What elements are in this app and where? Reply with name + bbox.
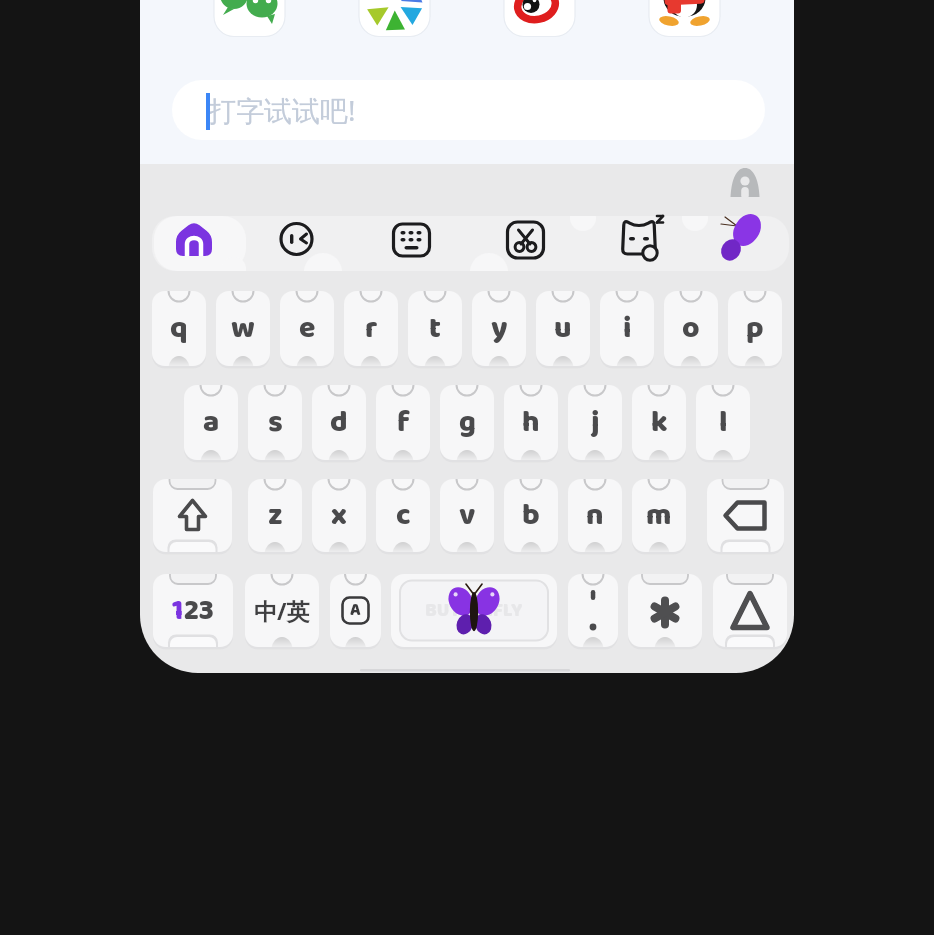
staticText: n: [586, 492, 604, 540]
staticText: BUTTERFLY: [425, 596, 523, 626]
button[interactable]: [709, 212, 769, 270]
button[interactable]: y: [472, 291, 526, 366]
button[interactable]: [495, 212, 555, 270]
staticText: y: [491, 305, 508, 353]
staticText: d: [330, 399, 348, 447]
button[interactable]: q: [152, 291, 206, 366]
button[interactable]: l: [696, 385, 750, 460]
button[interactable]: [628, 574, 702, 647]
staticText: e: [299, 305, 316, 353]
button[interactable]: [568, 574, 618, 647]
button[interactable]: s: [248, 385, 302, 460]
staticText: q: [170, 305, 188, 353]
staticText: 123: [172, 588, 214, 634]
button[interactable]: [381, 212, 441, 270]
staticText: u: [554, 305, 572, 353]
button[interactable]: 123: [153, 574, 233, 647]
staticText: f: [397, 399, 410, 447]
staticText: t: [429, 305, 441, 353]
button[interactable]: j: [568, 385, 622, 460]
button[interactable]: t: [408, 291, 462, 366]
button[interactable]: i: [600, 291, 654, 366]
staticText: v: [459, 492, 476, 540]
staticText: a: [203, 399, 220, 447]
staticText: o: [682, 305, 700, 353]
button[interactable]: c: [376, 479, 430, 552]
button[interactable]: [266, 212, 326, 270]
button[interactable]: g: [440, 385, 494, 460]
staticText: l: [719, 399, 728, 447]
button[interactable]: [609, 212, 669, 270]
button[interactable]: [713, 574, 787, 647]
button[interactable]: b: [504, 479, 558, 552]
staticText: 打字试试吧!: [208, 91, 356, 129]
staticText: h: [522, 399, 540, 447]
button[interactable]: v: [440, 479, 494, 552]
staticText: w: [231, 305, 255, 353]
staticText: b: [522, 492, 540, 540]
button[interactable]: a: [184, 385, 238, 460]
button[interactable]: h: [504, 385, 558, 460]
button[interactable]: u: [536, 291, 590, 366]
staticText: g: [459, 399, 476, 447]
button[interactable]: f: [376, 385, 430, 460]
button[interactable]: 中/英: [245, 574, 319, 647]
button[interactable]: BUTTERFLY: [391, 574, 557, 647]
button[interactable]: x: [312, 479, 366, 552]
staticText: j: [591, 399, 600, 447]
button[interactable]: [172, 80, 765, 140]
button[interactable]: [153, 479, 232, 552]
button[interactable]: w: [216, 291, 270, 366]
staticText: i: [623, 305, 632, 353]
staticText: s: [268, 399, 283, 447]
staticText: z: [268, 492, 283, 540]
staticText: r: [365, 305, 378, 353]
staticText: c: [396, 492, 411, 540]
staticText: k: [651, 399, 668, 447]
staticText: 中/英: [254, 595, 310, 626]
button[interactable]: p: [728, 291, 782, 366]
button[interactable]: o: [664, 291, 718, 366]
button[interactable]: m: [632, 479, 686, 552]
staticText: A: [350, 597, 361, 624]
button[interactable]: e: [280, 291, 334, 366]
staticText: m: [646, 492, 672, 540]
button[interactable]: [164, 212, 224, 270]
staticText: x: [331, 492, 347, 540]
button[interactable]: d: [312, 385, 366, 460]
button[interactable]: A: [330, 574, 381, 647]
button[interactable]: k: [632, 385, 686, 460]
button[interactable]: z: [248, 479, 302, 552]
button[interactable]: [707, 479, 784, 552]
button[interactable]: r: [344, 291, 398, 366]
button[interactable]: n: [568, 479, 622, 552]
staticText: p: [746, 305, 764, 353]
